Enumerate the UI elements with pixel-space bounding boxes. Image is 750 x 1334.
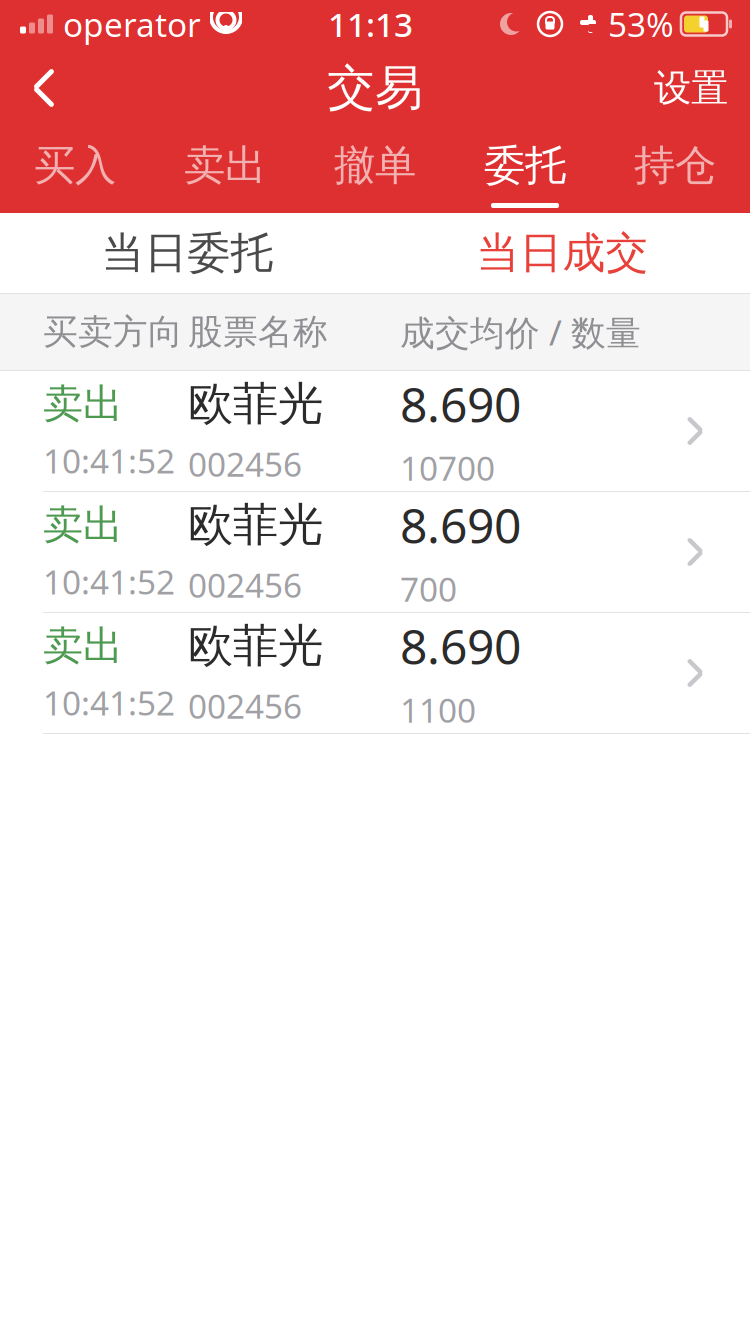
staticText: 交易 — [327, 58, 423, 117]
staticText: 撤单 — [334, 140, 416, 191]
button[interactable]: 卖出 — [0, 492, 750, 612]
staticText: 8.690 — [400, 614, 521, 678]
staticText: 10700 — [400, 446, 495, 490]
staticText: 卖出 — [43, 500, 123, 549]
staticText: 委托 — [484, 140, 566, 191]
button[interactable]: 当日委托 — [0, 213, 375, 293]
staticText: 卖出 — [43, 379, 123, 428]
staticText: 10:41:52 — [43, 559, 175, 604]
staticText: 设置 — [654, 65, 728, 111]
staticText: 700 — [400, 567, 457, 611]
staticText: 欧菲光 — [188, 376, 323, 432]
staticText: 002456 — [188, 442, 302, 486]
staticText: 卖出 — [43, 621, 123, 670]
staticText: 当日委托 — [101, 227, 273, 279]
staticText: 买卖方向 — [43, 311, 183, 353]
staticText: 买入 — [34, 140, 116, 191]
staticText: 持仓 — [634, 140, 716, 191]
button[interactable]: 撤单 — [300, 128, 450, 213]
staticText: 欧菲光 — [188, 497, 323, 553]
button[interactable]: 持仓 — [600, 128, 750, 213]
button[interactable]: 卖出 — [150, 128, 300, 213]
staticText: 卖出 — [184, 140, 266, 191]
button[interactable]: 设置 — [632, 48, 750, 128]
staticText: 8.690 — [400, 372, 521, 436]
staticText: 成交均价 / 数量 — [400, 309, 641, 355]
staticText: operator — [63, 2, 201, 46]
button[interactable]: 卖出 — [0, 613, 750, 733]
button[interactable]: 卖出 — [0, 371, 750, 491]
staticText: 11:13 — [328, 2, 413, 46]
staticText: 1100 — [400, 688, 476, 732]
staticText: 10:41:52 — [43, 438, 175, 483]
staticText: 10:41:52 — [43, 680, 175, 725]
button[interactable]: 委托 — [450, 128, 600, 213]
staticText: 欧菲光 — [188, 618, 323, 674]
staticText: 8.690 — [400, 493, 521, 557]
staticText: 当日成交 — [476, 227, 648, 279]
button[interactable]: 买入 — [0, 128, 150, 213]
button[interactable]: 当日成交 — [375, 213, 750, 293]
staticText: 53% — [608, 2, 674, 46]
staticText: 股票名称 — [188, 311, 328, 353]
staticText: 002456 — [188, 684, 302, 728]
staticText: 002456 — [188, 563, 302, 607]
button[interactable]: 返回 — [0, 48, 88, 128]
